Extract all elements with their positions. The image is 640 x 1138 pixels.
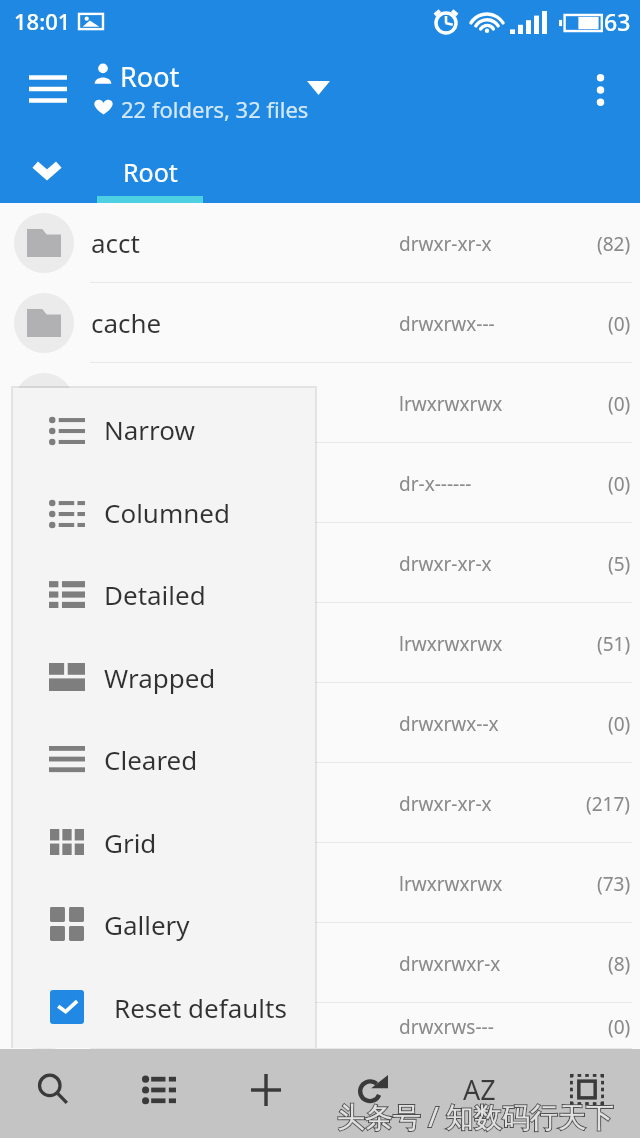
staticText: Reset defaults: [114, 990, 287, 1025]
button[interactable]: More options: [575, 65, 625, 115]
staticText: Detailed: [104, 577, 206, 612]
staticText: (0): [608, 391, 631, 417]
staticText: AZ: [463, 1071, 496, 1108]
staticText: (51): [597, 631, 631, 657]
button[interactable]: dev: [0, 763, 640, 843]
button[interactable]: Sort: [426, 1049, 533, 1138]
staticText: dr-x------: [399, 471, 472, 497]
button[interactable]: d: [0, 603, 640, 683]
button[interactable]: data: [0, 683, 640, 763]
staticText: lrwxrwxrwx: [399, 631, 503, 657]
staticText: drwxr-xr-x: [399, 231, 492, 257]
staticText: mnt: [91, 1008, 141, 1043]
staticText: (73): [597, 871, 631, 897]
staticText: (0): [608, 1014, 631, 1040]
staticText: Columned: [104, 495, 230, 530]
button[interactable]: Menu: [20, 61, 76, 117]
staticText: 头条号 / 知数码行天下: [337, 1097, 614, 1135]
staticText: (0): [608, 311, 631, 337]
button[interactable]: cache: [0, 283, 640, 363]
button[interactable]: Collapse: [15, 138, 79, 202]
staticText: drwxr-xr-x: [399, 551, 492, 577]
button[interactable]: Refresh: [319, 1049, 426, 1138]
button[interactable]: Search: [0, 1049, 106, 1138]
staticText: lrwxrwxrwx: [399, 871, 503, 897]
button[interactable]: config: [0, 443, 640, 523]
button[interactable]: Wrapped: [13, 636, 315, 718]
staticText: (0): [608, 711, 631, 737]
button[interactable]: Gallery: [13, 883, 315, 965]
button[interactable]: cust: [0, 523, 640, 603]
staticText: (8): [608, 951, 631, 977]
button[interactable]: Expand: [296, 66, 340, 110]
staticText: 63: [604, 6, 631, 37]
staticText: Root: [120, 58, 180, 95]
button[interactable]: Detailed: [13, 553, 315, 635]
staticText: drwxrwx--x: [399, 711, 499, 737]
staticText: (5): [608, 551, 631, 577]
staticText: drwxrwx---: [399, 311, 495, 337]
button[interactable]: List view: [106, 1049, 212, 1138]
staticText: drwxr-xr-x: [399, 791, 492, 817]
button[interactable]: Cleared: [13, 718, 315, 800]
staticText: cache: [91, 305, 162, 340]
staticText: 头条号 / 知数码行天下: [337, 1097, 614, 1135]
staticText: Cleared: [104, 742, 198, 777]
staticText: lrwxrwxrwx: [399, 391, 503, 417]
staticText: Gallery: [104, 907, 190, 942]
button[interactable]: acct: [0, 203, 640, 283]
button[interactable]: mnt: [0, 1003, 640, 1049]
button[interactable]: Add: [212, 1049, 319, 1138]
staticText: Root: [123, 155, 178, 189]
button[interactable]: Reset defaults: [13, 966, 315, 1048]
button[interactable]: Narrow: [13, 388, 315, 470]
staticText: (217): [586, 791, 631, 817]
button[interactable]: etc: [0, 843, 640, 923]
staticText: Narrow: [104, 412, 195, 447]
staticText: charger: [91, 385, 187, 420]
staticText: Wrapped: [104, 660, 216, 695]
staticText: 22 folders, 32 files: [121, 94, 309, 124]
button[interactable]: Root: [97, 140, 203, 203]
staticText: 18:01: [14, 6, 71, 36]
staticText: Grid: [104, 825, 157, 860]
staticText: acct: [91, 225, 140, 260]
staticText: (0): [608, 471, 631, 497]
button[interactable]: Columned: [13, 471, 315, 553]
button[interactable]: Select: [533, 1049, 640, 1138]
button[interactable]: firmware: [0, 923, 640, 1003]
staticText: drwxrwxr-x: [399, 951, 501, 977]
button[interactable]: charger: [0, 363, 640, 443]
button[interactable]: Grid: [13, 801, 315, 883]
staticText: (82): [597, 231, 631, 257]
staticText: drwxrws---: [399, 1014, 494, 1040]
